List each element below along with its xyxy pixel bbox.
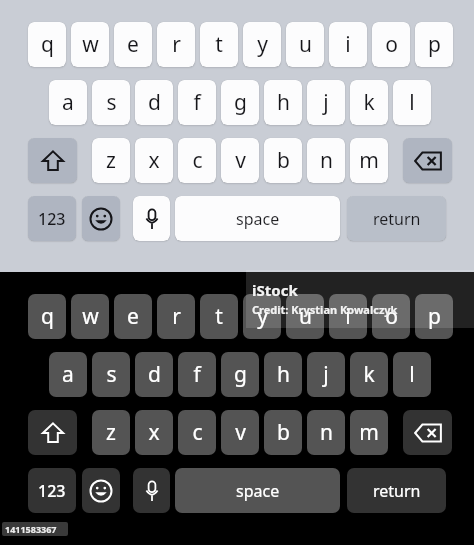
button[interactable]: l [393, 352, 431, 397]
staticText: u [299, 302, 312, 331]
button[interactable]: n [307, 410, 345, 455]
button[interactable]: c [178, 410, 216, 455]
button[interactable]: y [243, 22, 281, 67]
button[interactable]: v [221, 410, 259, 455]
button[interactable]: s [92, 352, 130, 397]
staticText: t [215, 30, 223, 59]
staticText: o [385, 30, 398, 59]
staticText: p [428, 302, 441, 331]
staticText: x [148, 146, 160, 175]
staticText: Credit: Krystian Kowalczyk [252, 302, 398, 317]
button[interactable]: j [307, 80, 345, 125]
button[interactable]: p [415, 22, 453, 67]
button[interactable]: o [372, 294, 410, 339]
button[interactable]: l [393, 80, 431, 125]
staticText: z [106, 418, 116, 447]
staticText: r [172, 30, 181, 59]
button[interactable]: m [350, 410, 388, 455]
button[interactable]: q [28, 294, 66, 339]
button[interactable]: Emoji [82, 468, 120, 513]
staticText: g [234, 360, 247, 389]
button[interactable]: h [264, 352, 302, 397]
staticText: q [41, 30, 54, 59]
staticText: h [277, 88, 290, 117]
button[interactable]: space [175, 196, 340, 241]
button[interactable]: u [286, 22, 324, 67]
button[interactable]: return [347, 196, 446, 241]
button[interactable]: Shift [28, 138, 77, 183]
staticText: d [148, 360, 161, 389]
staticText: r [172, 302, 181, 331]
button[interactable]: o [372, 22, 410, 67]
button[interactable]: j [307, 352, 345, 397]
button[interactable]: Dictate [133, 468, 170, 513]
button[interactable]: z [92, 138, 130, 183]
button[interactable]: Backspace [403, 410, 452, 455]
button[interactable]: Shift [28, 410, 77, 455]
button[interactable]: t [200, 294, 238, 339]
staticText: z [106, 146, 116, 175]
button[interactable]: Numbers [28, 196, 76, 241]
button[interactable]: Dictate [133, 196, 170, 241]
button[interactable]: f [178, 352, 216, 397]
button[interactable]: d [135, 352, 173, 397]
button[interactable]: g [221, 352, 259, 397]
staticText: b [277, 146, 290, 175]
staticText: p [428, 30, 441, 59]
staticText: w [82, 302, 99, 331]
button[interactable]: w [71, 22, 109, 67]
staticText: a [62, 88, 74, 117]
button[interactable]: c [178, 138, 216, 183]
button[interactable]: s [92, 80, 130, 125]
staticText: x [148, 418, 160, 447]
staticText: j [323, 88, 329, 117]
button[interactable]: m [350, 138, 388, 183]
button[interactable]: t [200, 22, 238, 67]
button[interactable]: g [221, 80, 259, 125]
button[interactable]: u [286, 294, 324, 339]
staticText: d [148, 88, 161, 117]
button[interactable]: f [178, 80, 216, 125]
staticText: j [323, 360, 329, 389]
staticText: s [106, 360, 117, 389]
staticText: f [193, 88, 201, 117]
button[interactable]: x [135, 138, 173, 183]
button[interactable]: b [264, 410, 302, 455]
staticText: l [409, 88, 415, 117]
button[interactable]: i [329, 22, 367, 67]
button[interactable]: h [264, 80, 302, 125]
button[interactable]: q [28, 22, 66, 67]
button[interactable]: k [350, 80, 388, 125]
button[interactable]: r [157, 22, 195, 67]
button[interactable]: x [135, 410, 173, 455]
button[interactable]: Numbers [28, 468, 76, 513]
button[interactable]: Emoji [82, 196, 120, 241]
button[interactable]: k [350, 352, 388, 397]
button[interactable]: i [329, 294, 367, 339]
staticText: 123 [38, 208, 66, 230]
staticText: e [127, 30, 139, 59]
button[interactable]: e [114, 294, 152, 339]
button[interactable]: n [307, 138, 345, 183]
staticText: space [236, 208, 280, 230]
button[interactable]: Backspace [403, 138, 452, 183]
button[interactable]: w [71, 294, 109, 339]
button[interactable]: p [415, 294, 453, 339]
button[interactable]: b [264, 138, 302, 183]
staticText: q [41, 302, 54, 331]
staticText: u [299, 30, 312, 59]
button[interactable]: return [347, 468, 446, 513]
button[interactable]: r [157, 294, 195, 339]
button[interactable]: z [92, 410, 130, 455]
button[interactable]: e [114, 22, 152, 67]
button[interactable]: a [49, 352, 87, 397]
button[interactable]: a [49, 80, 87, 125]
button[interactable]: y [243, 294, 281, 339]
staticText: w [82, 30, 99, 59]
button[interactable]: d [135, 80, 173, 125]
staticText: v [235, 146, 246, 175]
staticText: c [192, 418, 203, 447]
button[interactable]: space [175, 468, 340, 513]
staticText: h [277, 360, 290, 389]
button[interactable]: v [221, 138, 259, 183]
